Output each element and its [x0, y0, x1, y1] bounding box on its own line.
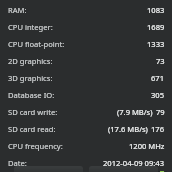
staticText: CPU frequency: — [8, 141, 63, 151]
staticText: RAM: — [8, 5, 27, 15]
staticText: 1333 — [147, 39, 165, 49]
staticText: 1083 — [147, 5, 165, 15]
staticText: 79 — [156, 107, 165, 117]
staticText: Date: — [8, 158, 27, 168]
button[interactable]: RAM: — [0, 1, 172, 18]
staticText: 1200 MHz — [129, 141, 165, 151]
staticText: 2D graphics: — [8, 56, 53, 66]
other: Run battery test — [156, 171, 167, 172]
button[interactable]: CPU integer: — [0, 18, 172, 35]
button[interactable]: Database IO: — [0, 86, 172, 103]
button[interactable]: 3D graphics: — [0, 69, 172, 86]
staticText: 671 — [151, 73, 165, 83]
staticText: SD card read: — [8, 124, 56, 134]
staticText: 3D graphics: — [8, 73, 53, 83]
staticText: 1689 — [147, 22, 165, 32]
button[interactable]: CPU float-point: — [0, 35, 172, 52]
staticText: 73 — [156, 56, 165, 66]
button[interactable]: SD card read: — [0, 120, 172, 137]
staticText: SD card write: — [8, 107, 58, 117]
button[interactable]: 2D graphics: — [0, 52, 172, 69]
staticText: (17.6 MB/s) — [108, 124, 148, 134]
staticText: (7.9 MB/s) — [117, 107, 153, 117]
button[interactable]: SD card write: — [0, 103, 172, 120]
staticText: Database IO: — [8, 90, 55, 100]
button[interactable]: Date: — [0, 154, 172, 171]
staticText: CPU float-point: — [8, 39, 65, 49]
button[interactable]: Test battery now! — [91, 171, 167, 172]
staticText: 305 — [151, 90, 165, 100]
staticText: 176 — [151, 124, 165, 134]
staticText: 2012-04-09 09:43 — [103, 158, 165, 168]
button[interactable]: CPU frequency: — [0, 137, 172, 154]
staticText: CPU integer: — [8, 22, 53, 32]
